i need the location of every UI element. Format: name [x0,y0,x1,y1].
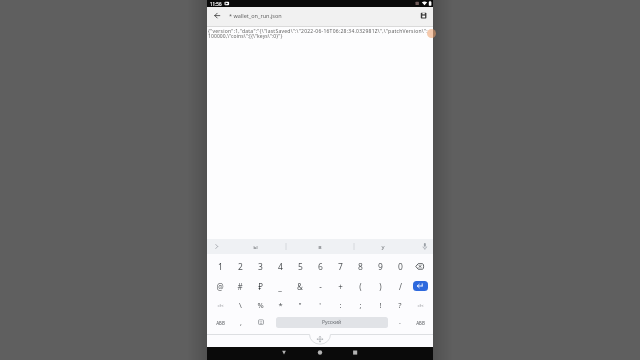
button[interactable]: ' [310,297,330,313]
button[interactable]: % [250,297,270,313]
button[interactable]: 4 [270,258,290,275]
staticText: ₽ [258,281,263,292]
staticText: : [339,300,342,310]
staticText: 3 [258,261,263,273]
staticText: ( [359,281,362,292]
staticText: 1 [218,261,223,273]
staticText: =\< [417,303,424,308]
button[interactable]: ? [390,297,410,313]
staticText: , [240,318,242,328]
button[interactable] [210,8,225,25]
staticText: + [338,281,343,292]
staticText: =\< [217,303,224,308]
button[interactable]: в [287,239,353,254]
staticText: {"version":1,"data":"{\"lastSaved\":\"20… [208,28,428,35]
staticText: " [298,300,302,310]
staticText: 2 [238,261,243,273]
staticText: 9 [378,261,383,273]
button[interactable]: 6 [310,258,330,275]
staticText: Русский [322,319,342,326]
button[interactable]: у [355,239,411,254]
button[interactable]: 0 [390,258,410,275]
staticText: / [399,281,402,292]
button[interactable] [416,8,431,25]
button[interactable]: , [234,315,248,330]
button[interactable]: ; [350,297,370,313]
staticText: 8 [358,261,363,273]
staticText: ! [379,300,382,310]
button[interactable]: 3 [250,258,270,275]
button[interactable]: 5 [290,258,310,275]
staticText: - [319,281,322,292]
button[interactable]: _ [270,278,290,295]
button[interactable]: / [390,278,410,295]
button[interactable]: 7 [330,258,350,275]
button[interactable]: . [393,314,407,329]
staticText: 11:56 [210,1,222,7]
button[interactable]: @ [210,278,230,295]
button[interactable]: ( [350,278,370,295]
button[interactable]: " [290,297,310,313]
staticText: АБВ [416,320,425,326]
staticText: # [237,281,243,292]
button[interactable]: 8 [350,258,370,275]
button[interactable] [312,347,328,360]
staticText: @ [216,281,224,292]
staticText: 6 [318,261,323,273]
staticText: ' [319,300,321,310]
staticText: % [257,300,264,310]
staticText: 0 [398,261,403,273]
button[interactable]: ) [370,278,390,295]
staticText: АБВ [216,320,225,326]
button[interactable]: ₽ [250,278,270,295]
staticText: * [278,300,283,310]
button[interactable]: ! [370,297,390,313]
staticText: * wallet_on_run.json [229,12,282,19]
staticText: ? [398,300,402,310]
button[interactable]: + [330,278,350,295]
staticText: ) [379,281,382,292]
button[interactable] [254,315,268,330]
staticText: ; [359,300,362,310]
staticText: 7 [338,261,343,273]
button[interactable]: & [290,278,310,295]
button[interactable]: - [310,278,330,295]
button[interactable]: ы [225,239,285,254]
button[interactable]: \ [230,297,250,313]
button[interactable] [410,257,430,274]
staticText: \ [239,300,242,310]
staticText: 100000,\"coins\":[{\"keys\":0}"} [208,33,283,40]
staticText: 4 [278,261,283,273]
button[interactable] [276,347,292,360]
button[interactable]: АБВ [210,315,230,330]
button[interactable]: : [330,297,350,313]
button[interactable]: 2 [230,258,250,275]
staticText: . [399,317,401,327]
button[interactable]: =\< [410,297,430,313]
button[interactable]: =\< [210,297,230,313]
staticText: у [381,243,385,251]
button[interactable] [413,281,428,291]
button[interactable] [347,347,363,360]
staticText: 5 [298,261,303,273]
staticText: _ [278,281,282,292]
button[interactable]: 1 [210,258,230,275]
staticText: ы [253,243,258,251]
staticText: & [297,281,303,292]
staticText: в [318,243,322,251]
button[interactable]: Русский [276,317,388,328]
button[interactable]: * [270,297,290,313]
button[interactable]: АБВ [410,315,430,330]
button[interactable]: 9 [370,258,390,275]
button[interactable]: # [230,278,250,295]
